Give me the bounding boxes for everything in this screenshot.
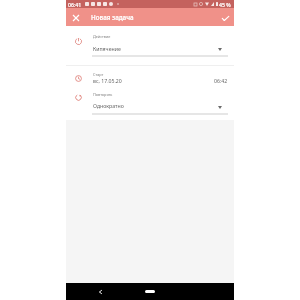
button[interactable]: Save xyxy=(218,11,232,25)
staticText: Повторять xyxy=(93,92,113,97)
button[interactable]: Back xyxy=(94,286,106,298)
staticText: Кипячение xyxy=(93,45,121,52)
staticText: Старт xyxy=(93,72,104,77)
button[interactable]: Start xyxy=(73,73,83,83)
button[interactable]: Expand xyxy=(216,103,224,111)
staticText: Однократно xyxy=(93,102,124,109)
staticText: 06:41 xyxy=(68,1,82,8)
button[interactable]: Expand xyxy=(216,45,224,53)
button[interactable]: Close xyxy=(69,11,83,25)
staticText: 06:42 xyxy=(214,77,228,84)
button[interactable]: Action xyxy=(73,36,83,46)
staticText: Действие xyxy=(93,34,111,39)
button[interactable]: Repeat xyxy=(73,92,83,102)
staticText: вс, 17.05.20 xyxy=(93,77,122,84)
button[interactable]: Home xyxy=(145,290,155,293)
staticText: Новая задача xyxy=(91,13,134,22)
staticText: 45 % xyxy=(219,1,231,8)
